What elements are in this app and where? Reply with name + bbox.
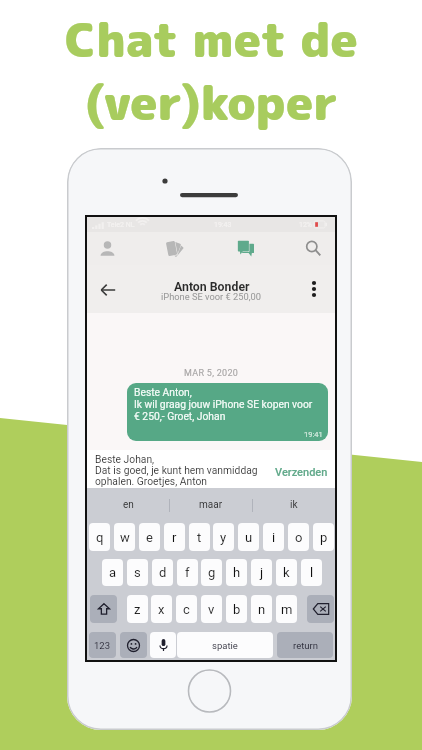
button[interactable]: s xyxy=(127,559,148,586)
button[interactable]: b xyxy=(226,595,247,623)
staticText: j xyxy=(260,565,264,580)
button[interactable]: z xyxy=(127,595,148,623)
button[interactable]: o xyxy=(288,523,309,551)
staticText: w xyxy=(120,530,130,545)
button[interactable]: t xyxy=(189,523,210,551)
button[interactable]: c xyxy=(176,595,197,623)
button[interactable]: j xyxy=(251,559,272,586)
staticText: p xyxy=(320,530,328,545)
staticText: d xyxy=(159,565,167,580)
staticText: 19:43 xyxy=(214,221,232,229)
button[interactable]: Terug xyxy=(95,277,121,303)
staticText: t xyxy=(197,530,202,545)
staticText: Beste Johan, Dat is goed, je kunt hem va… xyxy=(95,453,258,487)
staticText: l xyxy=(310,565,314,580)
button[interactable]: spatie xyxy=(177,632,273,658)
staticText: Anton Bonder xyxy=(174,280,250,294)
button[interactable]: q xyxy=(89,523,110,551)
staticText: m xyxy=(281,602,293,617)
button[interactable]: Advertenties xyxy=(158,232,189,265)
button[interactable]: Beste Anton, Ik wil graag jouw iPhone SE… xyxy=(127,383,328,441)
staticText: h xyxy=(233,565,241,580)
button[interactable]: h xyxy=(226,559,247,586)
staticText: s xyxy=(134,565,141,580)
button[interactable]: Shift xyxy=(90,595,117,623)
staticText: return xyxy=(293,640,318,651)
staticText: r xyxy=(172,530,177,545)
button[interactable]: m xyxy=(276,595,297,623)
staticText: c xyxy=(183,602,190,617)
staticText: ik xyxy=(290,499,298,511)
button[interactable]: Dicteren xyxy=(150,632,176,658)
button[interactable]: maar xyxy=(170,488,252,522)
button[interactable]: Verzenden xyxy=(275,466,328,479)
button[interactable]: r xyxy=(164,523,185,551)
button[interactable]: i xyxy=(263,523,284,551)
staticText: x xyxy=(158,602,165,617)
button[interactable]: Zoeken xyxy=(298,232,329,265)
staticText: i xyxy=(272,530,276,545)
button[interactable]: x xyxy=(151,595,172,623)
staticText: k xyxy=(283,565,290,580)
button[interactable]: return xyxy=(277,632,333,658)
button[interactable]: Account xyxy=(92,232,123,265)
staticText: (ver)koper xyxy=(85,69,338,135)
button[interactable]: y xyxy=(213,523,234,551)
staticText: Tele2 NL xyxy=(107,221,135,229)
button[interactable]: Emoji xyxy=(120,632,147,658)
button[interactable]: w xyxy=(114,523,135,551)
button[interactable]: Chat xyxy=(230,232,261,265)
staticText: iPhone SE voor € 250,00 xyxy=(161,291,262,302)
staticText: a xyxy=(109,565,117,580)
button[interactable]: d xyxy=(152,559,173,586)
staticText: g xyxy=(208,565,216,580)
staticText: q xyxy=(96,530,104,545)
staticText: Beste Anton, Ik wil graag jouw iPhone SE… xyxy=(134,386,313,422)
button[interactable]: ik xyxy=(253,488,335,522)
staticText: 12% xyxy=(299,221,312,229)
button[interactable]: f xyxy=(177,559,198,586)
button[interactable]: v xyxy=(201,595,222,623)
staticText: o xyxy=(295,530,303,545)
staticText: f xyxy=(185,565,190,580)
staticText: spatie xyxy=(212,640,238,651)
button[interactable]: p xyxy=(313,523,334,551)
staticText: y xyxy=(220,530,227,545)
staticText: MAR 5, 2020 xyxy=(184,368,239,379)
staticText: e xyxy=(146,530,153,545)
staticText: 123 xyxy=(94,640,111,651)
staticText: Chat met de xyxy=(65,6,358,72)
button[interactable]: g xyxy=(201,559,222,586)
staticText: 19:41 xyxy=(304,430,323,439)
button[interactable]: Meer opties xyxy=(302,277,326,301)
button[interactable]: u xyxy=(238,523,259,551)
staticText: maar xyxy=(199,499,223,511)
staticText: en xyxy=(123,499,134,511)
button[interactable]: 123 xyxy=(89,632,116,658)
staticText: b xyxy=(233,602,241,617)
button[interactable]: en xyxy=(87,488,169,522)
button[interactable]: n xyxy=(251,595,272,623)
staticText: n xyxy=(258,602,266,617)
button[interactable]: e xyxy=(139,523,160,551)
staticText: Verzenden xyxy=(275,466,328,479)
staticText: v xyxy=(208,602,215,617)
staticText: z xyxy=(134,602,141,617)
button[interactable]: Backspace xyxy=(307,595,334,623)
button[interactable]: l xyxy=(301,559,322,586)
staticText: u xyxy=(245,530,253,545)
button[interactable]: a xyxy=(102,559,123,586)
button[interactable]: k xyxy=(276,559,297,586)
